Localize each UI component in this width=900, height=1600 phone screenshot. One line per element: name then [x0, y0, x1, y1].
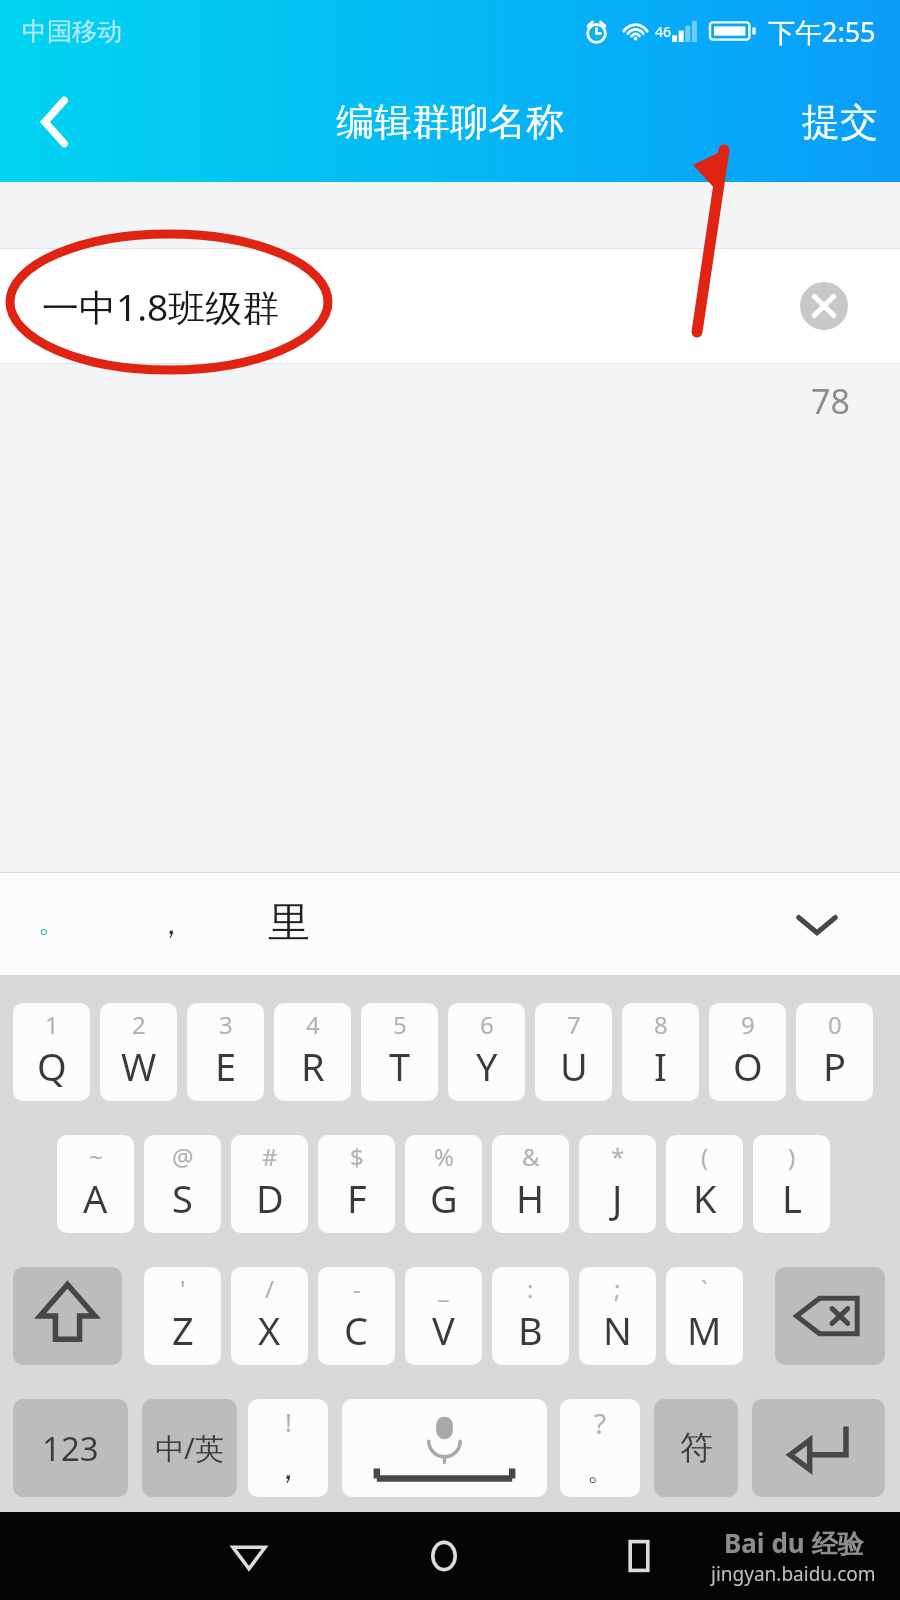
staticText: -	[353, 1272, 361, 1305]
button[interactable]: /	[231, 1267, 308, 1365]
button[interactable]: 中/英	[142, 1399, 237, 1497]
button[interactable]: `	[666, 1267, 743, 1365]
staticText: 2	[132, 1008, 146, 1041]
staticText: 6	[480, 1008, 494, 1041]
button[interactable]: '	[144, 1267, 221, 1365]
staticText: B	[518, 1304, 543, 1356]
staticText: Z	[172, 1304, 194, 1356]
staticText: 7	[567, 1008, 581, 1041]
button[interactable]: Shift	[13, 1267, 122, 1365]
button[interactable]: ;	[579, 1267, 656, 1365]
staticText: 编辑群聊名称	[336, 98, 564, 146]
button[interactable]: _	[405, 1267, 482, 1365]
button[interactable]: )	[753, 1135, 830, 1233]
button[interactable]: 符	[654, 1399, 738, 1497]
staticText: 。	[38, 907, 64, 940]
button[interactable]: Clear	[800, 282, 848, 330]
button[interactable]: :	[492, 1267, 569, 1365]
staticText: 中/英	[155, 1428, 224, 1468]
button[interactable]: (	[666, 1135, 743, 1233]
staticText: :	[527, 1272, 534, 1305]
staticText: )	[788, 1140, 796, 1173]
staticText: J	[612, 1172, 623, 1224]
staticText: W	[121, 1040, 157, 1092]
button[interactable]: Hide keyboard	[790, 897, 844, 951]
staticText: ~	[89, 1140, 103, 1173]
button[interactable]: !	[248, 1399, 328, 1497]
staticText: 提交	[802, 98, 878, 146]
staticText: U	[560, 1040, 588, 1092]
staticText: /	[265, 1272, 274, 1305]
button[interactable]: 1	[13, 1003, 90, 1101]
button[interactable]: %	[405, 1135, 482, 1233]
staticText: G	[430, 1172, 458, 1224]
button[interactable]: *	[579, 1135, 656, 1233]
staticText: I	[654, 1040, 667, 1092]
staticText: 9	[741, 1008, 755, 1041]
staticText: A	[83, 1172, 108, 1224]
staticText: *	[611, 1140, 625, 1173]
staticText: (	[701, 1140, 709, 1173]
button[interactable]: 提交	[802, 62, 878, 182]
button[interactable]: 2	[100, 1003, 177, 1101]
button[interactable]: 3	[187, 1003, 264, 1101]
button[interactable]: -	[318, 1267, 395, 1365]
button[interactable]: Backspace	[775, 1267, 885, 1365]
staticText: 一中1.8班级群	[42, 281, 280, 332]
staticText: ，	[272, 1448, 304, 1488]
button[interactable]: Back	[210, 1512, 288, 1600]
staticText: 下午2:55	[768, 13, 876, 50]
staticText: M	[687, 1304, 722, 1356]
staticText: '	[180, 1272, 186, 1305]
button[interactable]: Recent apps	[600, 1512, 678, 1600]
staticText: Y	[476, 1040, 498, 1092]
button[interactable]: 123	[13, 1399, 128, 1497]
staticText: 8	[654, 1008, 668, 1041]
staticText: O	[733, 1040, 763, 1092]
button[interactable]: $	[318, 1135, 395, 1233]
staticText: N	[603, 1304, 632, 1356]
staticText: K	[693, 1172, 717, 1224]
button[interactable]: ?	[560, 1399, 640, 1497]
staticText: `	[701, 1272, 708, 1305]
staticText: &	[522, 1140, 540, 1173]
staticText: 0	[828, 1008, 842, 1041]
button[interactable]: ~	[57, 1135, 134, 1233]
staticText: R	[301, 1040, 325, 1092]
staticText: ?	[594, 1404, 607, 1442]
button[interactable]: 5	[361, 1003, 438, 1101]
button[interactable]: Home	[405, 1512, 483, 1600]
button[interactable]: Enter	[752, 1399, 885, 1497]
staticText: Bai du 经验	[724, 1525, 864, 1561]
button[interactable]: 0	[796, 1003, 873, 1101]
staticText: T	[389, 1040, 411, 1092]
staticText: S	[172, 1172, 193, 1224]
staticText: ，	[156, 905, 186, 943]
staticText: H	[516, 1172, 545, 1224]
button[interactable]: @	[144, 1135, 221, 1233]
button[interactable]: 6	[448, 1003, 525, 1101]
staticText: 中国移动	[22, 16, 122, 47]
button[interactable]: Space	[342, 1399, 547, 1497]
button[interactable]: 4	[274, 1003, 351, 1101]
button[interactable]: #	[231, 1135, 308, 1233]
staticText: #	[262, 1140, 278, 1173]
staticText: X	[258, 1304, 281, 1356]
staticText: %	[434, 1140, 454, 1173]
staticText: 123	[42, 1426, 99, 1471]
staticText: V	[432, 1304, 455, 1356]
staticText: $	[350, 1140, 364, 1173]
staticText: Q	[37, 1040, 67, 1092]
staticText: 里	[268, 897, 310, 950]
staticText: P	[823, 1040, 846, 1092]
button[interactable]: 9	[709, 1003, 786, 1101]
button[interactable]: &	[492, 1135, 569, 1233]
staticText: jingyan.baidu.com	[711, 1561, 876, 1587]
button[interactable]: Back	[0, 62, 110, 182]
staticText: 3	[219, 1008, 233, 1041]
staticText: 46	[655, 22, 672, 41]
button[interactable]: 7	[535, 1003, 612, 1101]
staticText: L	[782, 1172, 802, 1224]
staticText: _	[438, 1272, 449, 1305]
button[interactable]: 8	[622, 1003, 699, 1101]
